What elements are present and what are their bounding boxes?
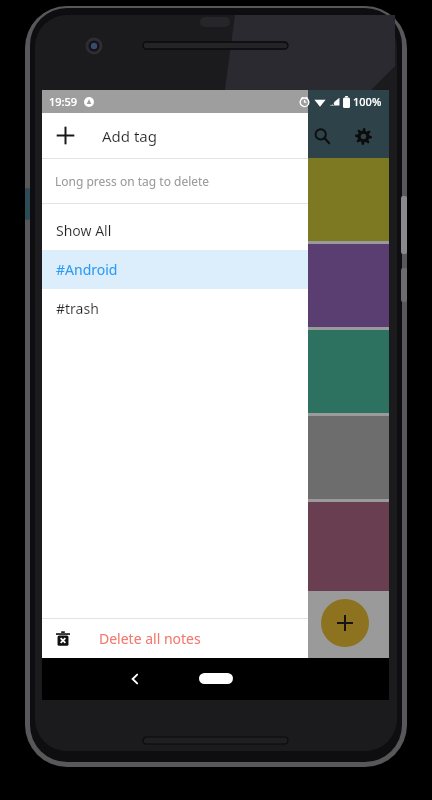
staticText: Long press on tag to delete [55, 173, 210, 189]
staticText: 100% [353, 94, 382, 109]
staticText: dDev [44, 249, 66, 261]
button[interactable]: cture [42, 330, 389, 413]
button[interactable]: Search [305, 119, 339, 153]
button[interactable]: android [42, 416, 389, 499]
button[interactable]: Delete all notes [42, 619, 308, 658]
staticText: Add tag [102, 126, 157, 146]
button[interactable]: Back [118, 662, 152, 696]
button[interactable]: #Android [42, 250, 308, 289]
staticText: terial [44, 261, 76, 279]
staticText: #trash [56, 299, 99, 318]
button[interactable]: #trash [42, 289, 308, 328]
staticText: Delete all notes [99, 629, 201, 648]
staticText: Android [44, 217, 89, 233]
staticText: Android [44, 303, 89, 319]
button[interactable]: Add note [321, 599, 369, 647]
staticText: Show All [56, 221, 112, 240]
button[interactable]: Settings [346, 119, 380, 153]
button[interactable]: dDev [42, 244, 389, 327]
button[interactable]: Home [199, 673, 233, 684]
button[interactable]: Android [42, 502, 389, 591]
staticText: 19:59 [49, 94, 78, 109]
staticText: plate [44, 175, 75, 193]
button[interactable]: e [42, 158, 389, 241]
button[interactable]: Add tag [42, 113, 308, 158]
staticText: #Android [56, 260, 118, 279]
button[interactable]: Show All [42, 211, 308, 250]
